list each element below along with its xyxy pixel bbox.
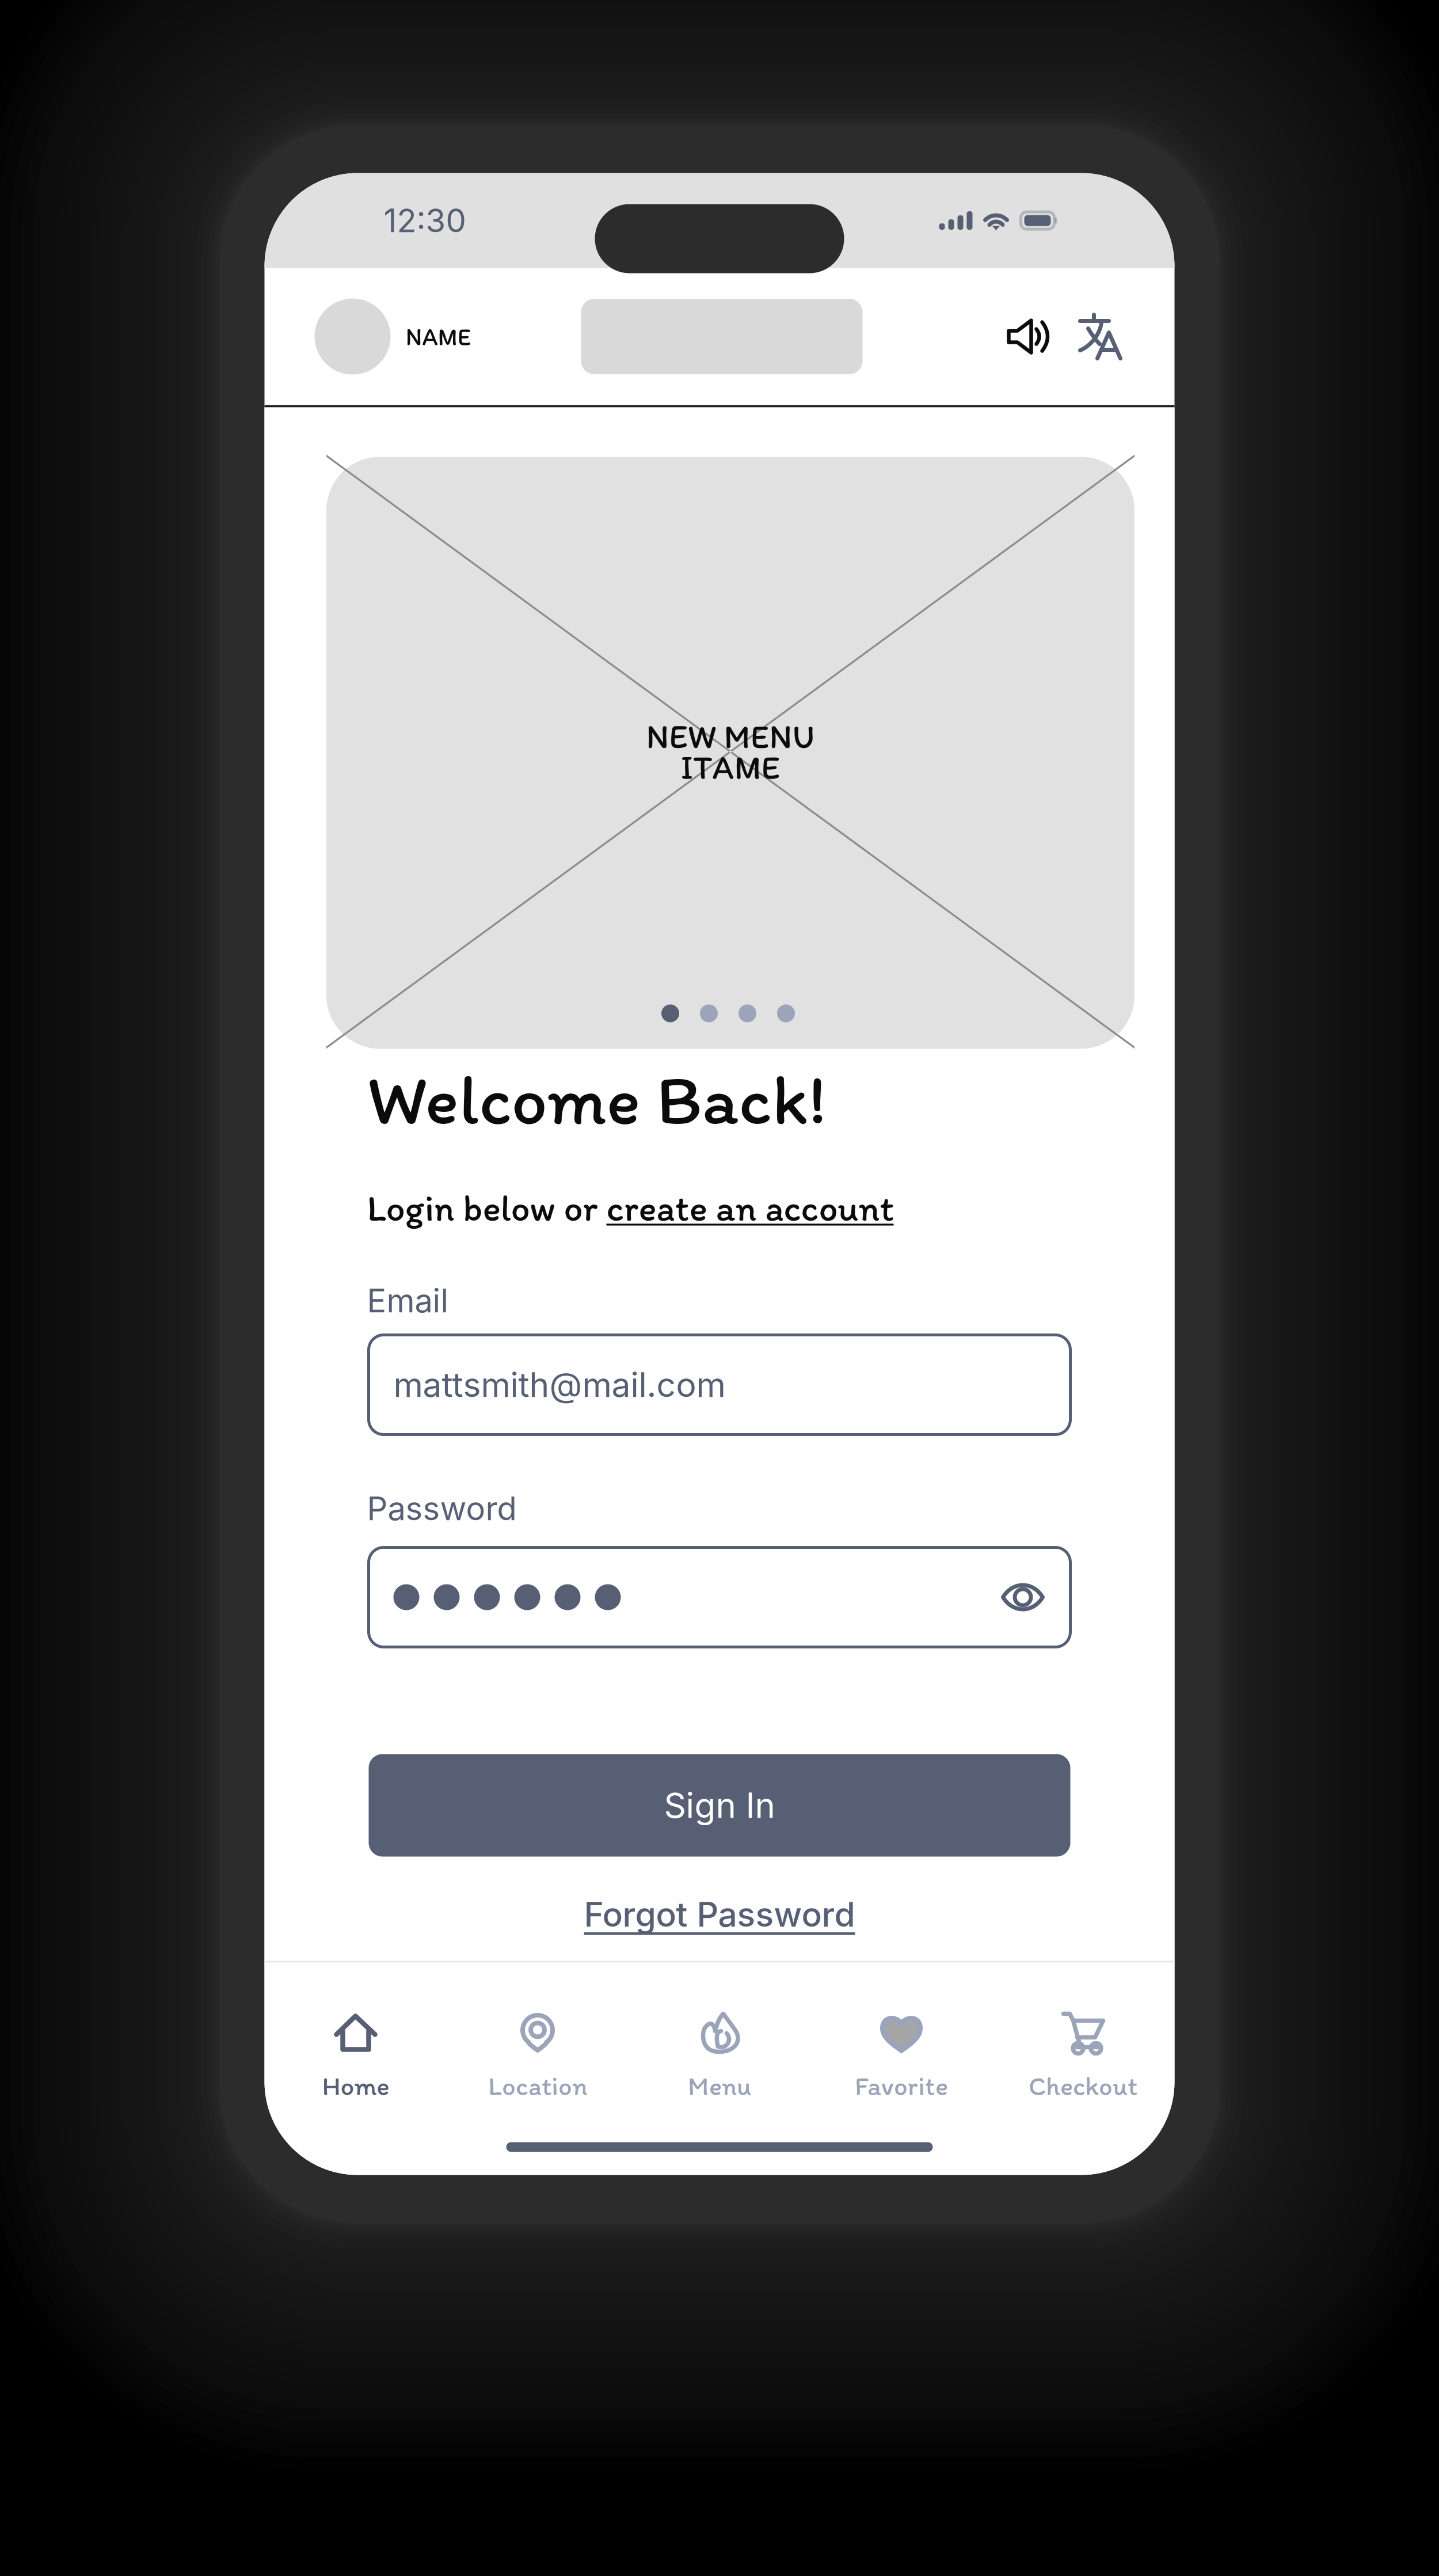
staticText: Password (367, 1489, 517, 1528)
staticText: Forgot Password (584, 1894, 855, 1935)
button[interactable]: Menu (629, 1963, 810, 2106)
button[interactable]: NAME (315, 299, 471, 375)
button[interactable]: Checkout (992, 1963, 1174, 2106)
button[interactable]: Translate (1075, 314, 1120, 359)
button[interactable]: Sign In (369, 1754, 1070, 1857)
button[interactable]: create an account (606, 1185, 894, 1230)
staticText: NAME (406, 322, 471, 351)
staticText: Email (367, 1281, 449, 1320)
staticText: 12:30 (384, 201, 466, 240)
button[interactable]: Favorite (810, 1963, 992, 2106)
button[interactable]: Forgot Password (369, 1894, 1070, 1935)
staticText: Login below or (367, 1185, 606, 1230)
button[interactable]: Location (447, 1963, 629, 2106)
staticText: Favorite (855, 2070, 948, 2102)
button[interactable]: Home (265, 1963, 447, 2106)
staticText: ITAME (681, 747, 780, 787)
button[interactable]: Show password (1000, 1580, 1046, 1614)
staticText: Location (488, 2070, 587, 2102)
staticText: Welcome Back! (367, 1057, 826, 1142)
staticText: Sign In (664, 1784, 775, 1826)
staticText: Checkout (1029, 2070, 1138, 2102)
staticText: mattsmith@mail.com (393, 1364, 726, 1405)
staticText: Menu (688, 2070, 751, 2102)
staticText: Home (322, 2070, 389, 2102)
staticText: NEW MENU (646, 716, 815, 757)
staticText: create an account (606, 1185, 894, 1230)
button[interactable]: Sound (1006, 318, 1050, 355)
